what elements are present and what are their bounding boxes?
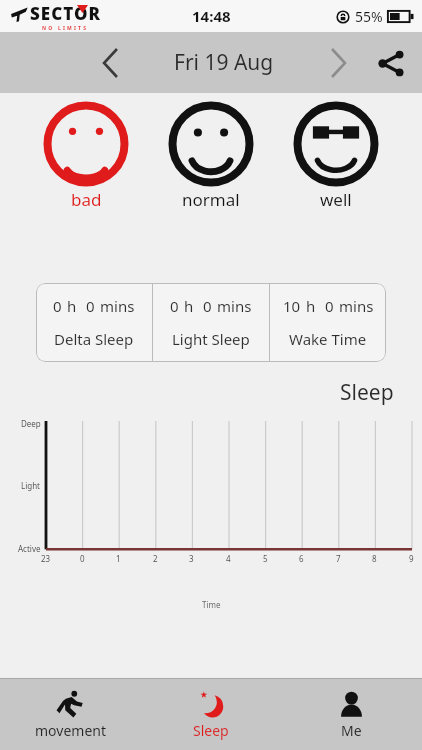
staticText: 14:48 bbox=[192, 6, 231, 26]
staticText: 55% bbox=[355, 7, 383, 26]
button[interactable]: Sleep bbox=[140, 679, 281, 750]
staticText: 0 bbox=[80, 553, 85, 564]
button[interactable]: 0 bbox=[36, 283, 152, 362]
button[interactable]: Share bbox=[368, 40, 414, 86]
staticText: Sleep bbox=[340, 378, 394, 407]
staticText: movement bbox=[35, 721, 106, 740]
staticText: 0 bbox=[170, 296, 179, 316]
staticText: NO LIMITS bbox=[42, 25, 89, 32]
staticText: 5 bbox=[263, 553, 268, 564]
staticText: mins bbox=[339, 296, 374, 316]
staticText: 0 bbox=[53, 296, 62, 316]
staticText: h bbox=[67, 296, 77, 316]
staticText: Active bbox=[18, 543, 41, 554]
staticText: mins bbox=[100, 296, 135, 316]
staticText: bad bbox=[71, 188, 102, 211]
button[interactable]: bad bbox=[39, 101, 133, 211]
staticText: 0 bbox=[203, 296, 212, 316]
button[interactable]: 10 bbox=[270, 283, 386, 362]
staticText: 0 bbox=[325, 296, 334, 316]
staticText: 23 bbox=[41, 553, 51, 564]
staticText: 4 bbox=[226, 553, 231, 564]
staticText: 3 bbox=[189, 553, 194, 564]
staticText: Light Sleep bbox=[172, 329, 250, 349]
staticText: 8 bbox=[372, 553, 377, 564]
staticText: Time bbox=[202, 599, 221, 610]
staticText: 6 bbox=[299, 553, 304, 564]
staticText: 7 bbox=[336, 553, 341, 564]
staticText: Fri 19 Aug bbox=[174, 48, 274, 77]
staticText: mins bbox=[217, 296, 252, 316]
staticText: well bbox=[320, 188, 352, 211]
staticText: Sleep bbox=[193, 721, 229, 740]
button[interactable]: 0 bbox=[153, 283, 269, 362]
staticText: h bbox=[306, 296, 316, 316]
staticText: 9 bbox=[409, 553, 414, 564]
staticText: normal bbox=[182, 188, 240, 211]
button[interactable]: normal bbox=[164, 101, 258, 211]
staticText: Light bbox=[21, 480, 41, 491]
staticText: 10 bbox=[283, 296, 301, 316]
staticText: Deep bbox=[21, 418, 41, 429]
button[interactable]: Next day bbox=[320, 45, 356, 81]
staticText: 2 bbox=[153, 553, 158, 564]
staticText: Delta Sleep bbox=[54, 329, 134, 349]
staticText: 0 bbox=[86, 296, 95, 316]
staticText: SECTOR bbox=[30, 2, 101, 25]
staticText: h bbox=[184, 296, 194, 316]
staticText: Wake Time bbox=[289, 329, 367, 349]
staticText: Me bbox=[341, 721, 362, 740]
staticText: 1 bbox=[116, 553, 121, 564]
button[interactable]: well bbox=[289, 101, 383, 211]
button[interactable]: Me bbox=[281, 679, 422, 750]
button[interactable]: Previous day bbox=[92, 45, 128, 81]
button[interactable]: movement bbox=[0, 679, 140, 750]
